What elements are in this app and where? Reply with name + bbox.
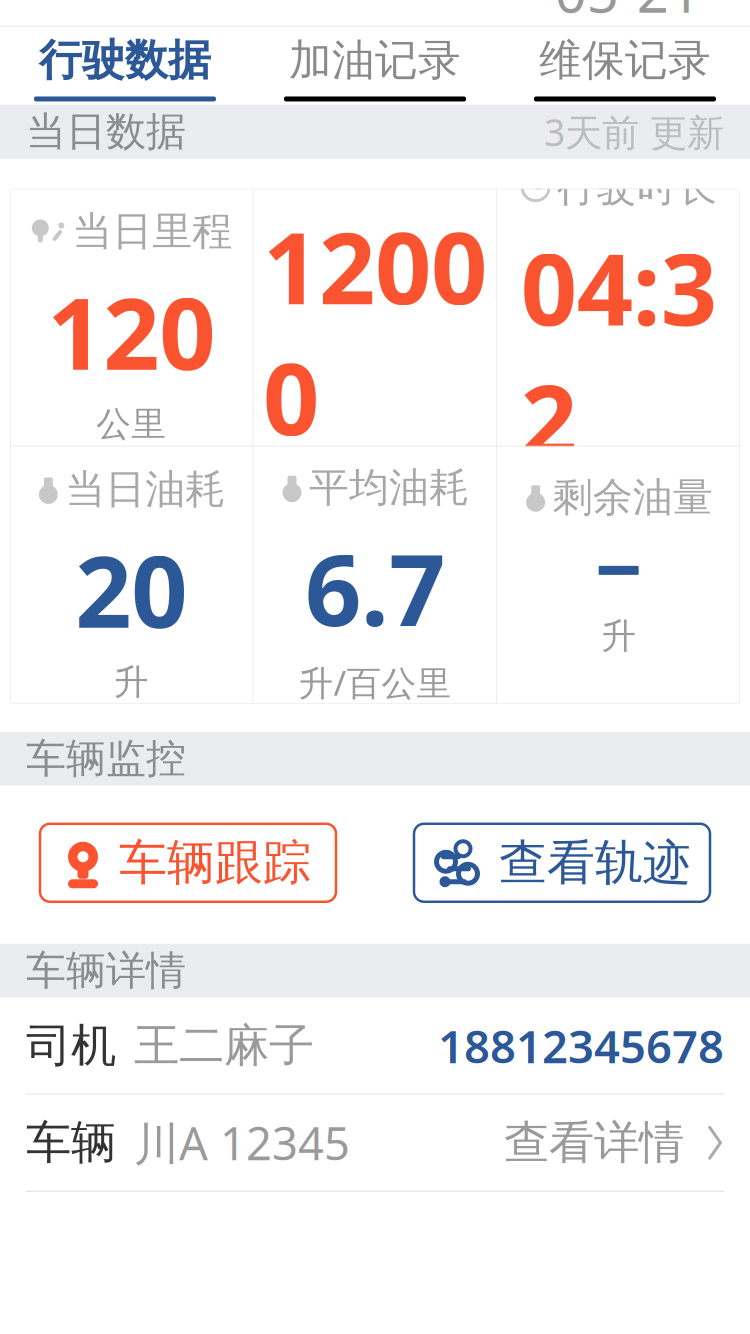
staticText: 查看轨迹 [499, 833, 691, 892]
button[interactable]: 加油记录 [250, 27, 500, 105]
staticText: 3天前 更新 [544, 107, 724, 157]
staticText: 加油记录 [289, 34, 461, 86]
staticText: 升 [601, 615, 636, 657]
staticText: 川A 12345 [134, 1113, 350, 1173]
staticText: 行驶时长 [557, 163, 717, 212]
staticText: 公里 [96, 403, 166, 446]
staticText: 行驶数据 [39, 34, 211, 86]
staticText: 平均油耗 [309, 463, 469, 512]
button[interactable]: 车辆 [0, 1095, 750, 1192]
staticText: 司机 [26, 1018, 116, 1074]
button[interactable]: 查看轨迹 [414, 824, 710, 902]
button[interactable]: 车辆跟踪 [40, 824, 336, 902]
staticText: 05-21 [555, 0, 701, 28]
button[interactable]: 2016 - [525, 0, 750, 34]
staticText: 20 [75, 524, 187, 655]
staticText: 查看详情 [504, 1115, 684, 1171]
staticText: 6.7 [305, 522, 445, 653]
staticText: 04:32 [521, 222, 717, 484]
staticText: 车辆监控 [26, 734, 186, 783]
button[interactable]: 维保记录 [500, 27, 750, 105]
staticText: 公里 [340, 468, 410, 511]
staticText: 升 [114, 661, 149, 704]
staticText: 总里程 [336, 141, 456, 190]
staticText: 车辆详情 [26, 946, 186, 995]
staticText: 剩余油量 [553, 473, 713, 522]
staticText: 120 [47, 266, 215, 397]
staticText: 王二麻子 [134, 1018, 314, 1074]
staticText: 当日里程 [72, 207, 232, 256]
staticText: 维保记录 [539, 34, 711, 86]
staticText: 18812345678 [438, 1016, 724, 1076]
staticText: 当日油耗 [65, 465, 225, 514]
staticText: 车辆 [26, 1115, 116, 1171]
staticText: 升/百公里 [298, 659, 451, 705]
button[interactable]: 司机 [0, 998, 750, 1095]
button[interactable]: 行驶数据 [0, 27, 250, 105]
staticText: 当日数据 [26, 107, 186, 156]
staticText: 12000 [263, 200, 487, 462]
staticText: 车辆跟踪 [119, 833, 311, 892]
